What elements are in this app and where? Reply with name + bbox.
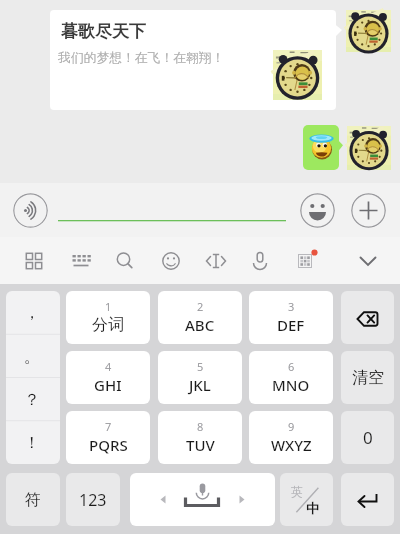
staticText: 5 — [197, 359, 204, 374]
button[interactable]: 5 — [158, 351, 242, 404]
button[interactable]: 6 — [249, 351, 333, 404]
button[interactable]: Voice — [244, 245, 276, 277]
button[interactable]: ？ — [6, 378, 60, 421]
staticText: 6 — [288, 359, 295, 374]
button[interactable]: More options — [351, 193, 386, 228]
staticText: 0 — [363, 426, 373, 449]
button[interactable]: 8 — [158, 411, 242, 464]
button[interactable]: 3 — [249, 291, 333, 344]
button[interactable] — [303, 125, 339, 170]
button[interactable]: Switch language — [280, 473, 333, 526]
staticText: 我们的梦想！在飞！在翱翔！ — [58, 50, 225, 66]
button[interactable]: 。 — [6, 335, 60, 378]
staticText: 123 — [79, 489, 107, 511]
button[interactable]: 1 — [66, 291, 150, 344]
staticText: 1 — [105, 299, 112, 314]
staticText: ？ — [24, 390, 40, 410]
button[interactable]: Sticker — [155, 245, 187, 277]
button[interactable]: 7 — [66, 411, 150, 464]
staticText: TUV — [186, 435, 215, 455]
button[interactable]: Space — [130, 473, 275, 526]
button[interactable]: Enter — [341, 473, 394, 526]
button[interactable]: 暮歌尽天下 — [50, 10, 336, 110]
other: Enter — [352, 484, 384, 516]
staticText: 。 — [24, 347, 40, 367]
other: Switch language — [288, 481, 326, 519]
staticText: 清空 — [352, 368, 384, 388]
button[interactable]: 符 — [6, 473, 60, 526]
staticText: 3 — [288, 299, 295, 314]
staticText: GHI — [94, 375, 122, 395]
staticText: 8 — [197, 419, 204, 434]
button[interactable]: Text cursor — [200, 245, 232, 277]
button[interactable]: Voice input — [13, 193, 48, 228]
button[interactable]: Mini program — [289, 245, 321, 277]
button[interactable]: 9 — [249, 411, 333, 464]
staticText: 中 — [306, 500, 319, 516]
button[interactable]: Collapse — [352, 245, 384, 277]
staticText: 分词 — [92, 315, 124, 335]
staticText: ABC — [185, 315, 215, 335]
staticText: 英 — [291, 484, 303, 499]
staticText: JKL — [189, 375, 211, 395]
button[interactable]: ！ — [6, 421, 60, 464]
staticText: ， — [24, 303, 40, 323]
staticText: 7 — [105, 419, 112, 434]
staticText: 暮歌尽天下 — [61, 21, 146, 42]
staticText: ！ — [24, 433, 40, 453]
staticText: 符 — [25, 490, 41, 510]
button[interactable]: 4 — [66, 351, 150, 404]
button[interactable]: 123 — [66, 473, 120, 526]
button[interactable]: Search — [109, 245, 141, 277]
staticText: 9 — [288, 419, 295, 434]
staticText: MNO — [272, 375, 310, 395]
button[interactable]: 2 — [158, 291, 242, 344]
other: Backspace — [352, 302, 384, 334]
staticText: DEF — [277, 315, 305, 335]
button[interactable]: 清空 — [341, 351, 394, 404]
button[interactable]: Emoji — [300, 193, 335, 228]
staticText: 2 — [197, 299, 204, 314]
button[interactable]: Backspace — [341, 291, 394, 344]
button[interactable]: ， — [6, 291, 60, 335]
button[interactable]: 0 — [341, 411, 394, 464]
button[interactable]: Keyboard — [65, 245, 97, 277]
button[interactable]: Apps — [18, 245, 50, 277]
staticText: WXYZ — [271, 435, 312, 455]
staticText: 4 — [105, 359, 112, 374]
staticText: PQRS — [89, 435, 128, 455]
